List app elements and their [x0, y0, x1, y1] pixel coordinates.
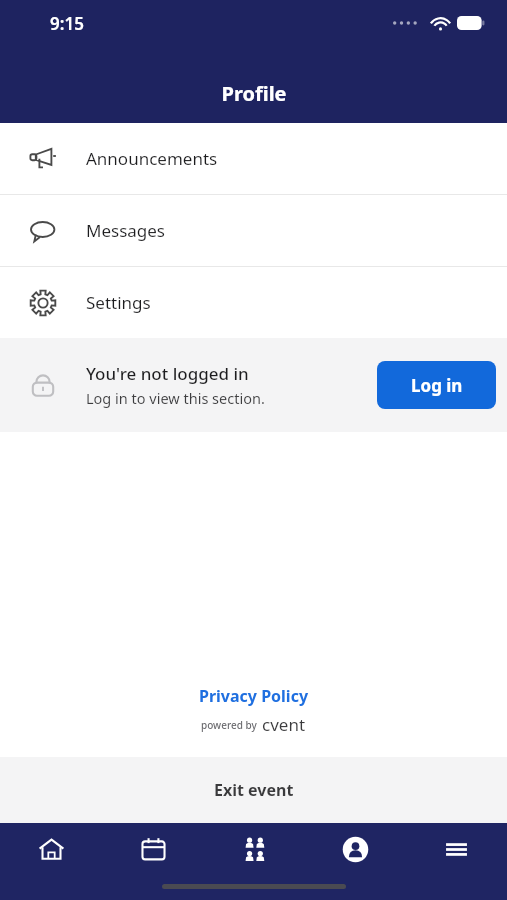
- staticText: You're not logged in: [86, 362, 249, 385]
- staticText: Settings: [86, 291, 151, 314]
- button[interactable]: Exit event: [0, 757, 507, 823]
- button[interactable]: Attendees: [204, 823, 305, 875]
- staticText: Exit event: [214, 779, 294, 801]
- button[interactable]: Log in: [377, 361, 496, 409]
- button[interactable]: Announcements: [0, 123, 507, 194]
- button[interactable]: Profile: [305, 823, 406, 875]
- button[interactable]: More: [406, 823, 507, 875]
- staticText: Log in to view this section.: [86, 388, 265, 408]
- staticText: Profile: [221, 80, 287, 107]
- staticText: cvent: [262, 713, 306, 736]
- button[interactable]: Settings: [0, 267, 507, 338]
- button[interactable]: Home: [0, 823, 102, 875]
- button[interactable]: Schedule: [102, 823, 204, 875]
- staticText: Log in: [411, 374, 463, 397]
- button[interactable]: Privacy Policy: [199, 685, 309, 707]
- button[interactable]: Messages: [0, 195, 507, 266]
- staticText: powered by: [201, 718, 257, 732]
- staticText: Messages: [86, 219, 166, 242]
- staticText: Announcements: [86, 147, 218, 170]
- staticText: 9:15: [50, 12, 84, 35]
